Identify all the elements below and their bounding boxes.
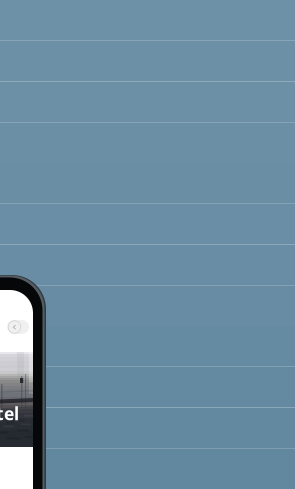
staticText: Hotel	[0, 402, 19, 425]
button[interactable]: Back	[7, 320, 29, 334]
